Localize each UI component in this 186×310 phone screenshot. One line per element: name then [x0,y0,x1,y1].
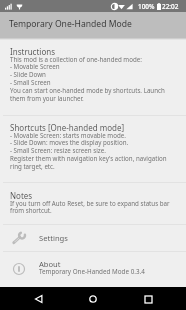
button[interactable]: Back [29,289,49,309]
button[interactable]: Settings [0,225,186,251]
staticText: 100% [138,2,155,11]
staticText: Temporary One-Handed Mode 0.3.4 [39,267,145,276]
staticText: If you turn off Auto Reset, be sure to e… [10,199,176,215]
staticText: Notes [10,190,33,201]
staticText: This mod is a collection of one-handed m… [10,55,176,103]
staticText: Settings [39,233,68,243]
staticText: 22:02 [162,2,179,11]
staticText: About [39,259,61,269]
button[interactable]: Home [83,289,103,309]
staticText: Instructions [10,46,56,57]
staticText: - Movable Screen: starts movable mode. -… [10,131,176,171]
staticText: Temporary One-Handed Mode [9,18,132,30]
button[interactable]: About [0,252,186,286]
staticText: Shortcuts [One-handed mode] [10,122,125,133]
button[interactable]: Recent apps [138,289,158,309]
